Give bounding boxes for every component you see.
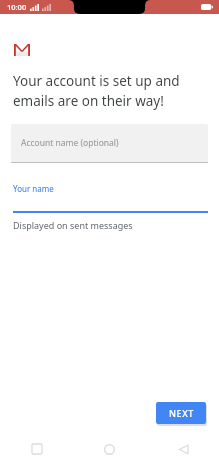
button[interactable]: Account name (optional) xyxy=(11,124,208,163)
button[interactable]: Recent apps xyxy=(0,434,73,464)
button[interactable]: Back xyxy=(146,434,219,464)
staticText: Displayed on sent messages xyxy=(13,219,133,231)
button[interactable]: NEXT xyxy=(156,402,206,424)
button[interactable]: Home xyxy=(73,434,146,464)
staticText: Account name (optional) xyxy=(21,137,119,149)
staticText: Your name xyxy=(13,183,54,194)
button[interactable]: Your name xyxy=(13,183,208,231)
staticText: 10:00 xyxy=(7,2,27,12)
staticText: Your account is set up and emails are on… xyxy=(13,72,180,110)
staticText: NEXT xyxy=(169,407,194,419)
